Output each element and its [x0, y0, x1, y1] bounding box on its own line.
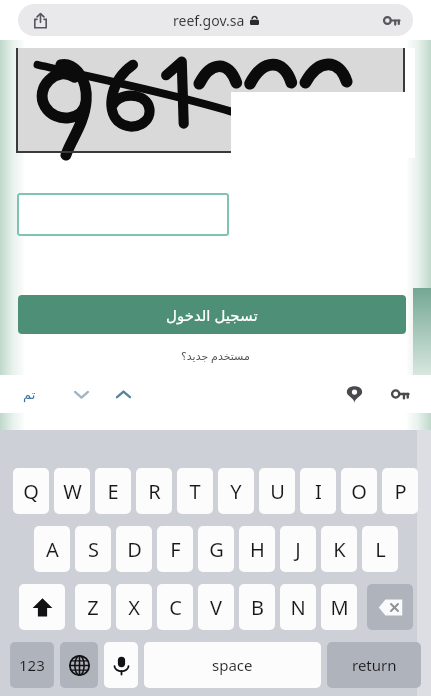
- staticText: H: [250, 536, 265, 563]
- staticText: A: [46, 536, 59, 563]
- button[interactable]: مستخدم جديد؟: [0, 345, 431, 365]
- staticText: Y: [230, 478, 242, 505]
- staticText: return: [352, 655, 397, 675]
- button[interactable]: Share: [26, 6, 54, 34]
- button[interactable]: 123: [10, 642, 54, 688]
- button[interactable]: O: [341, 468, 377, 514]
- staticText: K: [333, 536, 346, 563]
- button[interactable]: H: [239, 526, 275, 572]
- button[interactable]: W: [54, 468, 90, 514]
- button[interactable]: A: [34, 526, 70, 572]
- button[interactable]: Shift: [19, 584, 65, 630]
- staticText: U: [270, 478, 285, 505]
- button[interactable]: B: [239, 584, 275, 630]
- staticText: F: [170, 536, 181, 563]
- button[interactable]: R: [136, 468, 172, 514]
- staticText: L: [375, 536, 386, 563]
- button[interactable]: D: [116, 526, 152, 572]
- button[interactable]: X: [116, 584, 152, 630]
- button[interactable]: Next field: [66, 379, 96, 409]
- button[interactable]: T: [177, 468, 213, 514]
- staticText: reef.gov.sa: [173, 11, 245, 30]
- staticText: R: [148, 478, 161, 505]
- button[interactable]: Location: [339, 379, 369, 409]
- button[interactable]: Z: [75, 584, 111, 630]
- button[interactable]: space: [144, 642, 321, 688]
- staticText: W: [63, 478, 82, 505]
- staticText: V: [210, 594, 222, 621]
- button[interactable]: K: [321, 526, 357, 572]
- button[interactable]: Q: [13, 468, 49, 514]
- button[interactable]: V: [198, 584, 234, 630]
- staticText: P: [394, 478, 407, 505]
- staticText: Z: [87, 594, 99, 621]
- staticText: D: [127, 536, 142, 563]
- staticText: G: [209, 536, 224, 563]
- staticText: B: [251, 594, 264, 621]
- button[interactable]: L: [362, 526, 398, 572]
- button[interactable]: E: [95, 468, 131, 514]
- button[interactable]: S: [75, 526, 111, 572]
- button[interactable]: M: [321, 584, 357, 630]
- staticText: مستخدم جديد؟: [181, 348, 250, 363]
- button[interactable]: [17, 193, 229, 236]
- staticText: X: [128, 594, 140, 621]
- button[interactable]: C: [157, 584, 193, 630]
- staticText: تم: [23, 387, 36, 402]
- button[interactable]: F: [157, 526, 193, 572]
- button[interactable]: N: [280, 584, 316, 630]
- button[interactable]: Backspace: [367, 584, 413, 630]
- button[interactable]: تسجيل الدخول: [18, 295, 406, 334]
- button[interactable]: I: [300, 468, 336, 514]
- staticText: S: [88, 536, 99, 563]
- button[interactable]: Dictation: [104, 642, 138, 688]
- button[interactable]: Passwords: [385, 379, 415, 409]
- staticText: J: [295, 536, 301, 563]
- staticText: E: [107, 478, 119, 505]
- staticText: 123: [19, 655, 45, 675]
- button[interactable]: Previous field: [108, 379, 138, 409]
- staticText: C: [169, 594, 182, 621]
- staticText: M: [330, 594, 349, 621]
- staticText: T: [189, 478, 201, 505]
- staticText: N: [290, 594, 306, 621]
- staticText: Q: [23, 478, 39, 505]
- button[interactable]: P: [382, 468, 418, 514]
- button[interactable]: G: [198, 526, 234, 572]
- button[interactable]: J: [280, 526, 316, 572]
- staticText: space: [212, 655, 253, 675]
- staticText: I: [315, 478, 322, 505]
- button[interactable]: Switch keyboard: [60, 642, 98, 688]
- button[interactable]: Y: [218, 468, 254, 514]
- button[interactable]: return: [327, 642, 421, 688]
- button[interactable]: U: [259, 468, 295, 514]
- button[interactable]: تم: [14, 379, 44, 409]
- staticText: O: [351, 478, 367, 505]
- button[interactable]: Passwords: [377, 6, 405, 34]
- staticText: تسجيل الدخول: [166, 305, 258, 325]
